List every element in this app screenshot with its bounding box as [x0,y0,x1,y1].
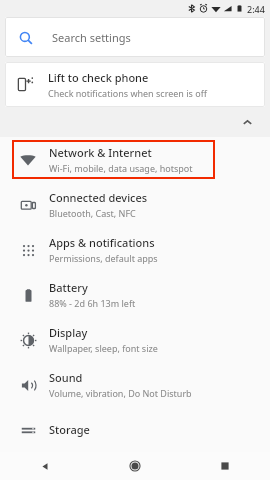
button[interactable]: Home [90,452,180,480]
button[interactable]: Battery [0,272,270,317]
button[interactable]: Collapse [236,111,258,133]
staticText: Check notifications when screen is off [48,87,207,99]
staticText: 88% - 2d 6h 13m left [49,297,136,309]
staticText: Network & Internet [49,145,152,160]
button[interactable]: Network & Internet [12,140,215,179]
staticText: Apps & notifications [49,235,155,250]
staticText: Display [49,325,88,340]
staticText: Permissions, default apps [49,252,158,264]
staticText: Storage [49,422,90,437]
button[interactable]: Lift to check phone [5,62,265,107]
staticText: Lift to check phone [48,70,149,85]
staticText: Wi-Fi, mobile, data usage, hotspot [49,162,193,174]
staticText: Search settings [52,30,131,45]
button[interactable]: Display [0,317,270,362]
staticText: Connected devices [49,190,148,205]
button[interactable]: Storage [0,407,270,452]
button[interactable]: Back [0,452,90,480]
staticText: Wallpaper, sleep, font size [49,342,158,354]
button[interactable]: Connected devices [0,182,270,227]
staticText: Volume, vibration, Do Not Disturb [49,387,192,399]
staticText: Battery [49,280,88,295]
button[interactable]: Sound [0,362,270,407]
staticText: Bluetooth, Cast, NFC [49,207,136,219]
button[interactable]: Recent apps [180,452,270,480]
staticText: Sound [49,370,83,385]
staticText: 2:44 [247,3,265,15]
button[interactable]: Apps & notifications [0,227,270,272]
button[interactable]: Search settings [5,17,265,57]
